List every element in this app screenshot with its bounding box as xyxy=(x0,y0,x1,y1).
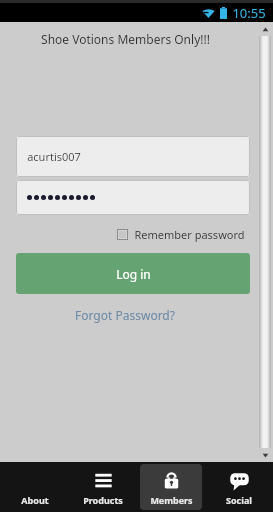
button[interactable]: Members xyxy=(140,464,202,510)
staticText: About xyxy=(21,494,49,505)
staticText: Shoe Votions Members Only!!! xyxy=(41,31,210,47)
button[interactable]: Remember password xyxy=(115,225,247,244)
button[interactable]: About xyxy=(3,464,66,510)
staticText: Products xyxy=(83,494,123,505)
button[interactable]: Scroll up xyxy=(259,22,271,36)
button[interactable]: Scroll down xyxy=(259,448,271,462)
button[interactable] xyxy=(16,180,250,215)
staticText: Members xyxy=(150,494,193,505)
staticText: 10:55 xyxy=(232,4,266,22)
staticText: Log in xyxy=(116,266,151,282)
button[interactable]: Forgot Password? xyxy=(71,305,179,325)
staticText: Social xyxy=(226,494,252,505)
button[interactable]: acurtis007 xyxy=(16,136,250,177)
button[interactable]: Social xyxy=(208,464,270,510)
button[interactable]: Log in xyxy=(16,253,250,294)
button[interactable]: Products xyxy=(72,464,134,510)
staticText: acurtis007 xyxy=(27,149,81,164)
staticText: Remember password xyxy=(134,227,245,242)
staticText: Forgot Password? xyxy=(75,307,175,323)
